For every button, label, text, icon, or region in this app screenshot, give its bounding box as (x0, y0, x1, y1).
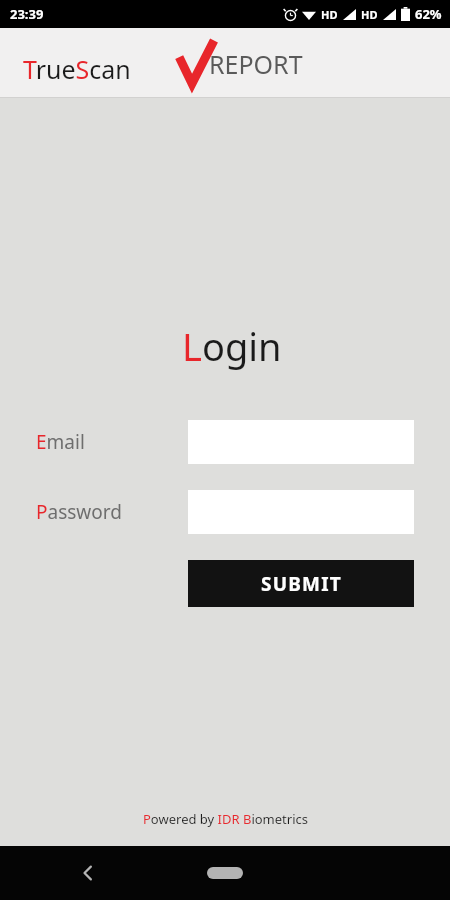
staticText: HD (361, 7, 378, 22)
staticText: SUBMIT (261, 571, 342, 597)
staticText: 62% (415, 5, 442, 23)
staticText: 23:39 (10, 5, 44, 23)
button[interactable]: Back (67, 852, 109, 894)
staticText: Login (182, 320, 282, 372)
staticText: Password (36, 499, 122, 525)
staticText: Email (36, 429, 85, 455)
staticText: HD (321, 7, 338, 22)
button[interactable]: Home (195, 858, 255, 888)
staticText: TrueScan (23, 52, 131, 86)
button[interactable]: SUBMIT (188, 560, 414, 607)
staticText: Powered by IDR Biometrics (143, 810, 308, 828)
staticText: REPORT (209, 47, 303, 81)
